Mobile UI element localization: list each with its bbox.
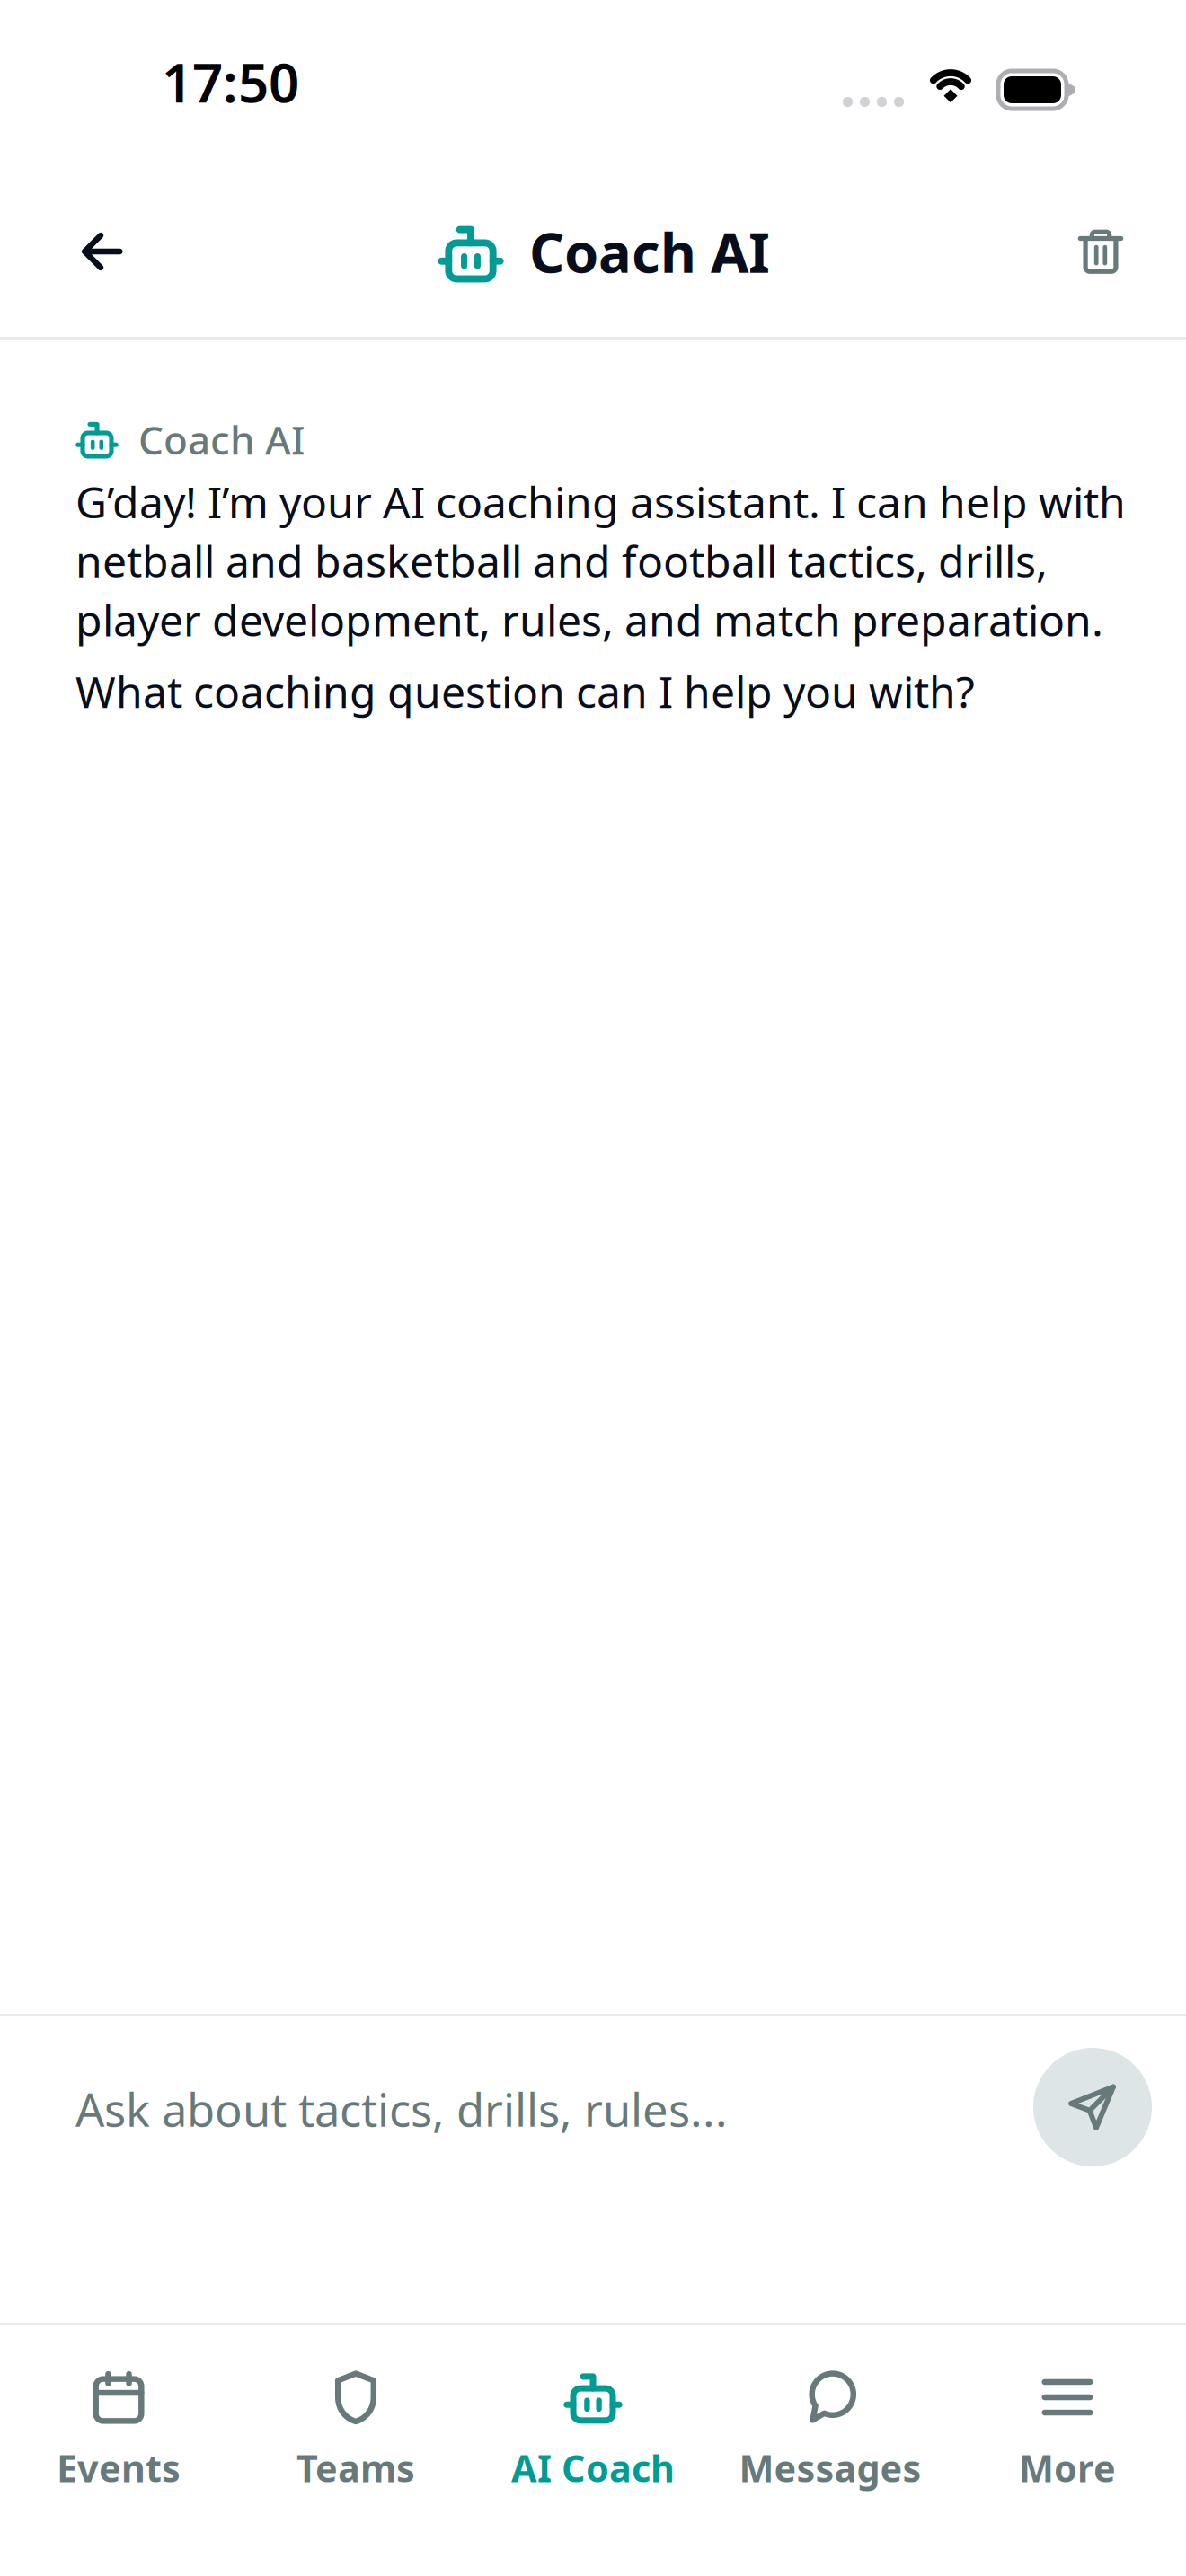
staticText: Teams <box>296 2443 415 2492</box>
staticText: Events <box>57 2443 181 2492</box>
button[interactable]: AI Coach <box>474 2323 712 2492</box>
button[interactable]: More <box>949 2323 1186 2492</box>
button[interactable]: Send <box>1033 2048 1152 2166</box>
button[interactable]: Back <box>52 202 151 301</box>
staticText: Ask about tactics, drills, rules... <box>75 2079 728 2139</box>
button[interactable]: Events <box>0 2323 237 2492</box>
button[interactable]: Ask about tactics, drills, rules... <box>75 2075 1033 2139</box>
button[interactable]: Teams <box>237 2323 474 2492</box>
staticText: Coach AI <box>138 413 305 466</box>
button[interactable]: Clear conversation <box>1051 202 1150 301</box>
staticText: 17:50 <box>162 46 299 118</box>
staticText: AI Coach <box>511 2443 675 2492</box>
staticText: Coach AI <box>529 215 770 288</box>
staticText: More <box>1019 2443 1116 2492</box>
staticText: What coaching question can I help you wi… <box>75 663 975 720</box>
staticText: G’day! I’m your AI coaching assistant. I… <box>75 473 1126 648</box>
staticText: Messages <box>739 2443 921 2492</box>
button[interactable]: Messages <box>712 2323 949 2492</box>
